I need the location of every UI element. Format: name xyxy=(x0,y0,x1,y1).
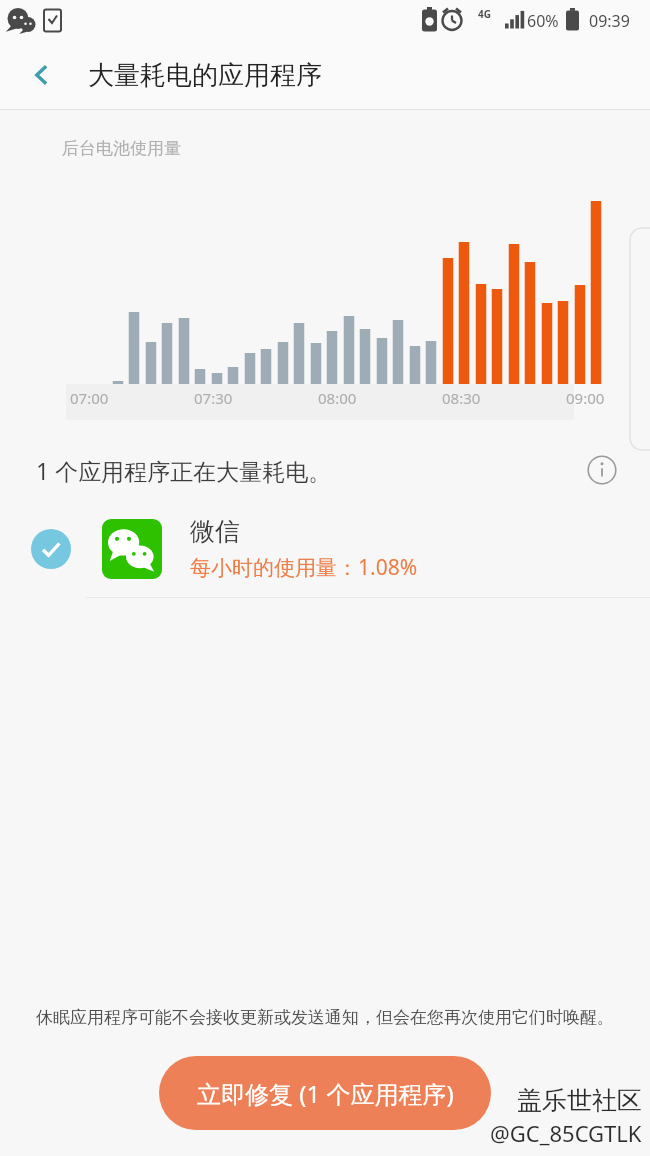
button[interactable]: More information xyxy=(580,448,624,492)
button[interactable]: 立即修复 (1 个应用程序) xyxy=(159,1056,491,1130)
staticText: 07:00 xyxy=(70,388,109,408)
staticText: 60% xyxy=(527,10,559,32)
staticText: @GC_85CGTLK xyxy=(490,1118,642,1148)
staticText: 休眠应用程序可能不会接收更新或发送通知，但会在您再次使用它们时唤醒。 xyxy=(36,1007,614,1028)
staticText: 09:00 xyxy=(566,388,605,408)
staticText: 盖乐世社区 xyxy=(517,1085,642,1116)
staticText: 08:00 xyxy=(318,388,357,408)
button[interactable]: Back xyxy=(16,49,68,101)
staticText: 后台电池使用量 xyxy=(62,138,181,159)
staticText: 07:30 xyxy=(194,388,233,408)
staticText: 09:39 xyxy=(589,10,630,32)
staticText: 大量耗电的应用程序 xyxy=(88,59,322,92)
staticText: 每小时的使用量：1.08% xyxy=(190,553,418,582)
staticText: 微信 xyxy=(190,516,240,547)
staticText: 4G xyxy=(478,7,491,21)
button[interactable]: 微信 xyxy=(0,501,650,597)
staticText: 立即修复 (1 个应用程序) xyxy=(197,1077,454,1110)
staticText: 1 个应用程序正在大量耗电。 xyxy=(36,455,332,486)
staticText: 08:30 xyxy=(442,388,481,408)
